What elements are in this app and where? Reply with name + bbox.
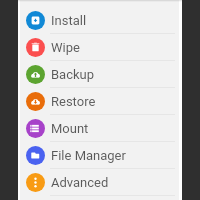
button[interactable]: Backup — [18, 61, 182, 88]
button[interactable]: Wipe — [18, 34, 182, 61]
button[interactable]: File Manager — [18, 142, 182, 169]
staticText: Backup — [51, 67, 95, 82]
staticText: Mount — [51, 121, 89, 136]
button[interactable]: Install — [18, 7, 182, 34]
staticText: Install — [51, 13, 87, 28]
staticText: Restore — [51, 94, 96, 109]
staticText: File Manager — [51, 148, 126, 163]
button[interactable]: Restore — [18, 88, 182, 115]
staticText: Advanced — [51, 175, 109, 190]
button[interactable]: Advanced — [18, 169, 182, 196]
button[interactable]: Mount — [18, 115, 182, 142]
staticText: Wipe — [51, 40, 80, 55]
